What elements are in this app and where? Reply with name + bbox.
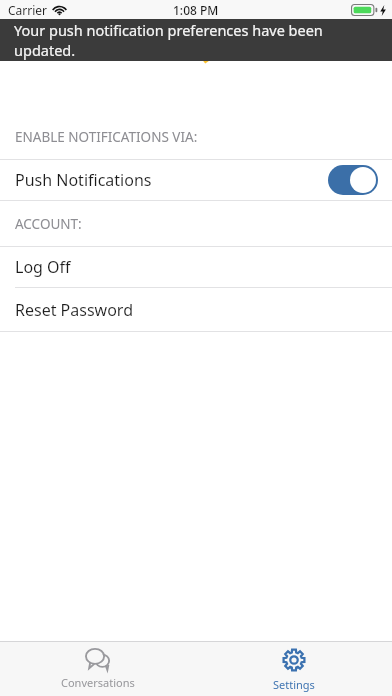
- staticText: ACCOUNT:: [15, 215, 82, 233]
- button[interactable]: Push Notifications: [0, 160, 392, 200]
- staticText: Settings: [273, 677, 315, 692]
- button[interactable]: Settings: [196, 642, 392, 696]
- button[interactable]: Your push notification preferences have …: [0, 19, 392, 61]
- button[interactable]: Log Off: [0, 247, 392, 287]
- button[interactable]: Reset Password: [0, 288, 392, 331]
- staticText: Reset Password: [15, 299, 133, 321]
- staticText: Your push notification preferences have …: [14, 20, 382, 60]
- staticText: Push Notifications: [15, 169, 152, 191]
- button[interactable]: Conversations: [0, 642, 196, 696]
- staticText: 1:08 PM: [173, 2, 219, 18]
- staticText: Conversations: [61, 675, 135, 690]
- staticText: ENABLE NOTIFICATIONS VIA:: [15, 128, 198, 146]
- staticText: Log Off: [15, 256, 71, 278]
- staticText: Carrier: [8, 2, 48, 18]
- button[interactable]: Push notifications toggle: [328, 165, 378, 195]
